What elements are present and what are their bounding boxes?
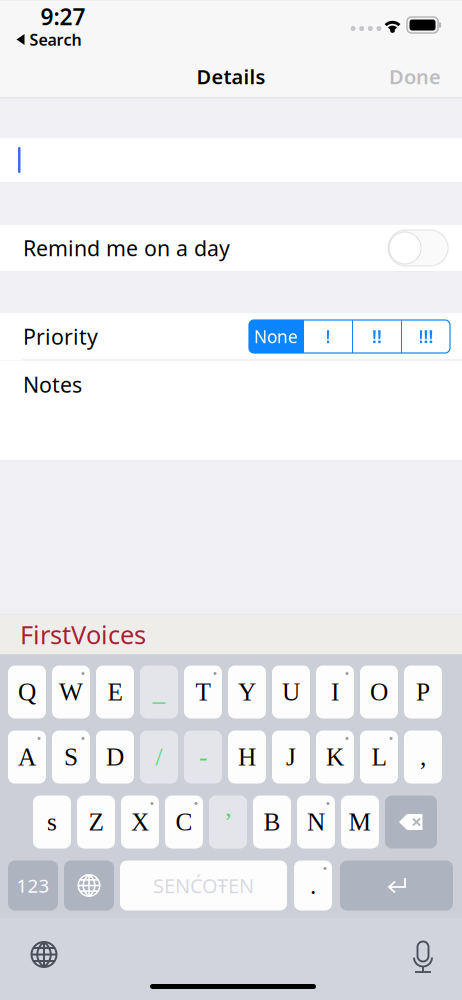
staticText: S — [64, 743, 78, 771]
button[interactable]: P — [404, 665, 442, 718]
button[interactable]: N — [297, 795, 335, 848]
button[interactable]: I — [316, 665, 354, 718]
staticText: L — [371, 743, 386, 771]
staticText: Remind me on a day — [23, 234, 230, 262]
button[interactable]: Search — [6, 25, 89, 54]
button[interactable]: H — [228, 730, 266, 783]
button[interactable]: K — [316, 730, 354, 783]
button[interactable]: B — [253, 795, 291, 848]
staticText: Search — [29, 29, 81, 50]
staticText: Priority — [23, 322, 98, 351]
staticText: I — [331, 678, 339, 706]
staticText: 123 — [16, 873, 49, 898]
button[interactable]: M — [341, 795, 379, 848]
button[interactable]: L — [360, 730, 398, 783]
staticText: T — [195, 678, 210, 706]
staticText: Notes — [23, 370, 82, 399]
staticText: A — [18, 743, 36, 771]
button[interactable]: E — [96, 665, 134, 718]
button[interactable]: T — [184, 665, 222, 718]
button[interactable]: Globe — [21, 931, 67, 977]
staticText: SENĆOŦEN — [153, 872, 254, 899]
staticText: O — [370, 678, 388, 706]
staticText: s — [47, 808, 57, 836]
staticText: E — [107, 678, 122, 706]
staticText: !!! — [418, 325, 433, 348]
staticText: _ — [152, 678, 165, 706]
button[interactable]: - — [184, 730, 222, 783]
staticText: N — [307, 808, 325, 836]
staticText: . — [310, 871, 316, 900]
staticText: Details — [196, 63, 265, 90]
button[interactable]: Done — [389, 55, 462, 98]
button[interactable]: A — [8, 730, 46, 783]
button[interactable]: Dictation — [400, 934, 446, 980]
button[interactable]: !!! — [402, 320, 450, 353]
button[interactable]: !! — [353, 320, 401, 353]
staticText: B — [263, 808, 280, 836]
button[interactable]: _ — [140, 665, 178, 718]
staticText: None — [254, 325, 298, 348]
button[interactable]: Remind me on a day — [388, 230, 448, 266]
button[interactable]: C — [165, 795, 203, 848]
staticText: K — [326, 743, 344, 771]
staticText: U — [282, 678, 300, 706]
staticText: H — [238, 743, 256, 771]
staticText: W — [59, 678, 83, 706]
button[interactable]: W — [52, 665, 90, 718]
button[interactable]: s — [33, 795, 71, 848]
button[interactable]: Q — [8, 665, 46, 718]
staticText: , — [420, 743, 426, 771]
button[interactable]: Y — [228, 665, 266, 718]
staticText: ! — [325, 325, 330, 348]
staticText: P — [416, 678, 430, 706]
staticText: M — [348, 808, 371, 836]
staticText: - — [199, 743, 207, 771]
button[interactable]: Delete — [385, 795, 437, 848]
staticText: / — [155, 743, 162, 771]
staticText: ’ — [224, 808, 232, 836]
staticText: X — [131, 808, 149, 836]
button[interactable]: . — [294, 860, 332, 910]
button[interactable]: / — [140, 730, 178, 783]
staticText: Done — [389, 63, 441, 90]
button[interactable]: O — [360, 665, 398, 718]
button[interactable]: X — [121, 795, 159, 848]
staticText: Q — [18, 678, 36, 706]
button[interactable]: S — [52, 730, 90, 783]
staticText: !! — [372, 325, 382, 348]
button[interactable]: J — [272, 730, 310, 783]
staticText: FirstVoices — [20, 618, 146, 651]
staticText: Z — [88, 808, 103, 836]
button[interactable]: None — [249, 320, 303, 353]
button[interactable]: U — [272, 665, 310, 718]
button[interactable]: Space — [120, 860, 287, 910]
button[interactable]: ’ — [209, 795, 247, 848]
button[interactable]: ! — [304, 320, 352, 353]
button[interactable]: Z — [77, 795, 115, 848]
button[interactable]: D — [96, 730, 134, 783]
button[interactable]: Return — [340, 860, 453, 910]
staticText: 9:27 — [40, 1, 85, 31]
button[interactable]: Next keyboard — [64, 860, 114, 910]
button[interactable]: Numbers — [8, 860, 58, 910]
staticText: J — [286, 743, 296, 771]
button[interactable]: , — [404, 730, 442, 783]
staticText: C — [175, 808, 192, 836]
staticText: Y — [238, 678, 256, 706]
staticText: D — [106, 743, 124, 771]
